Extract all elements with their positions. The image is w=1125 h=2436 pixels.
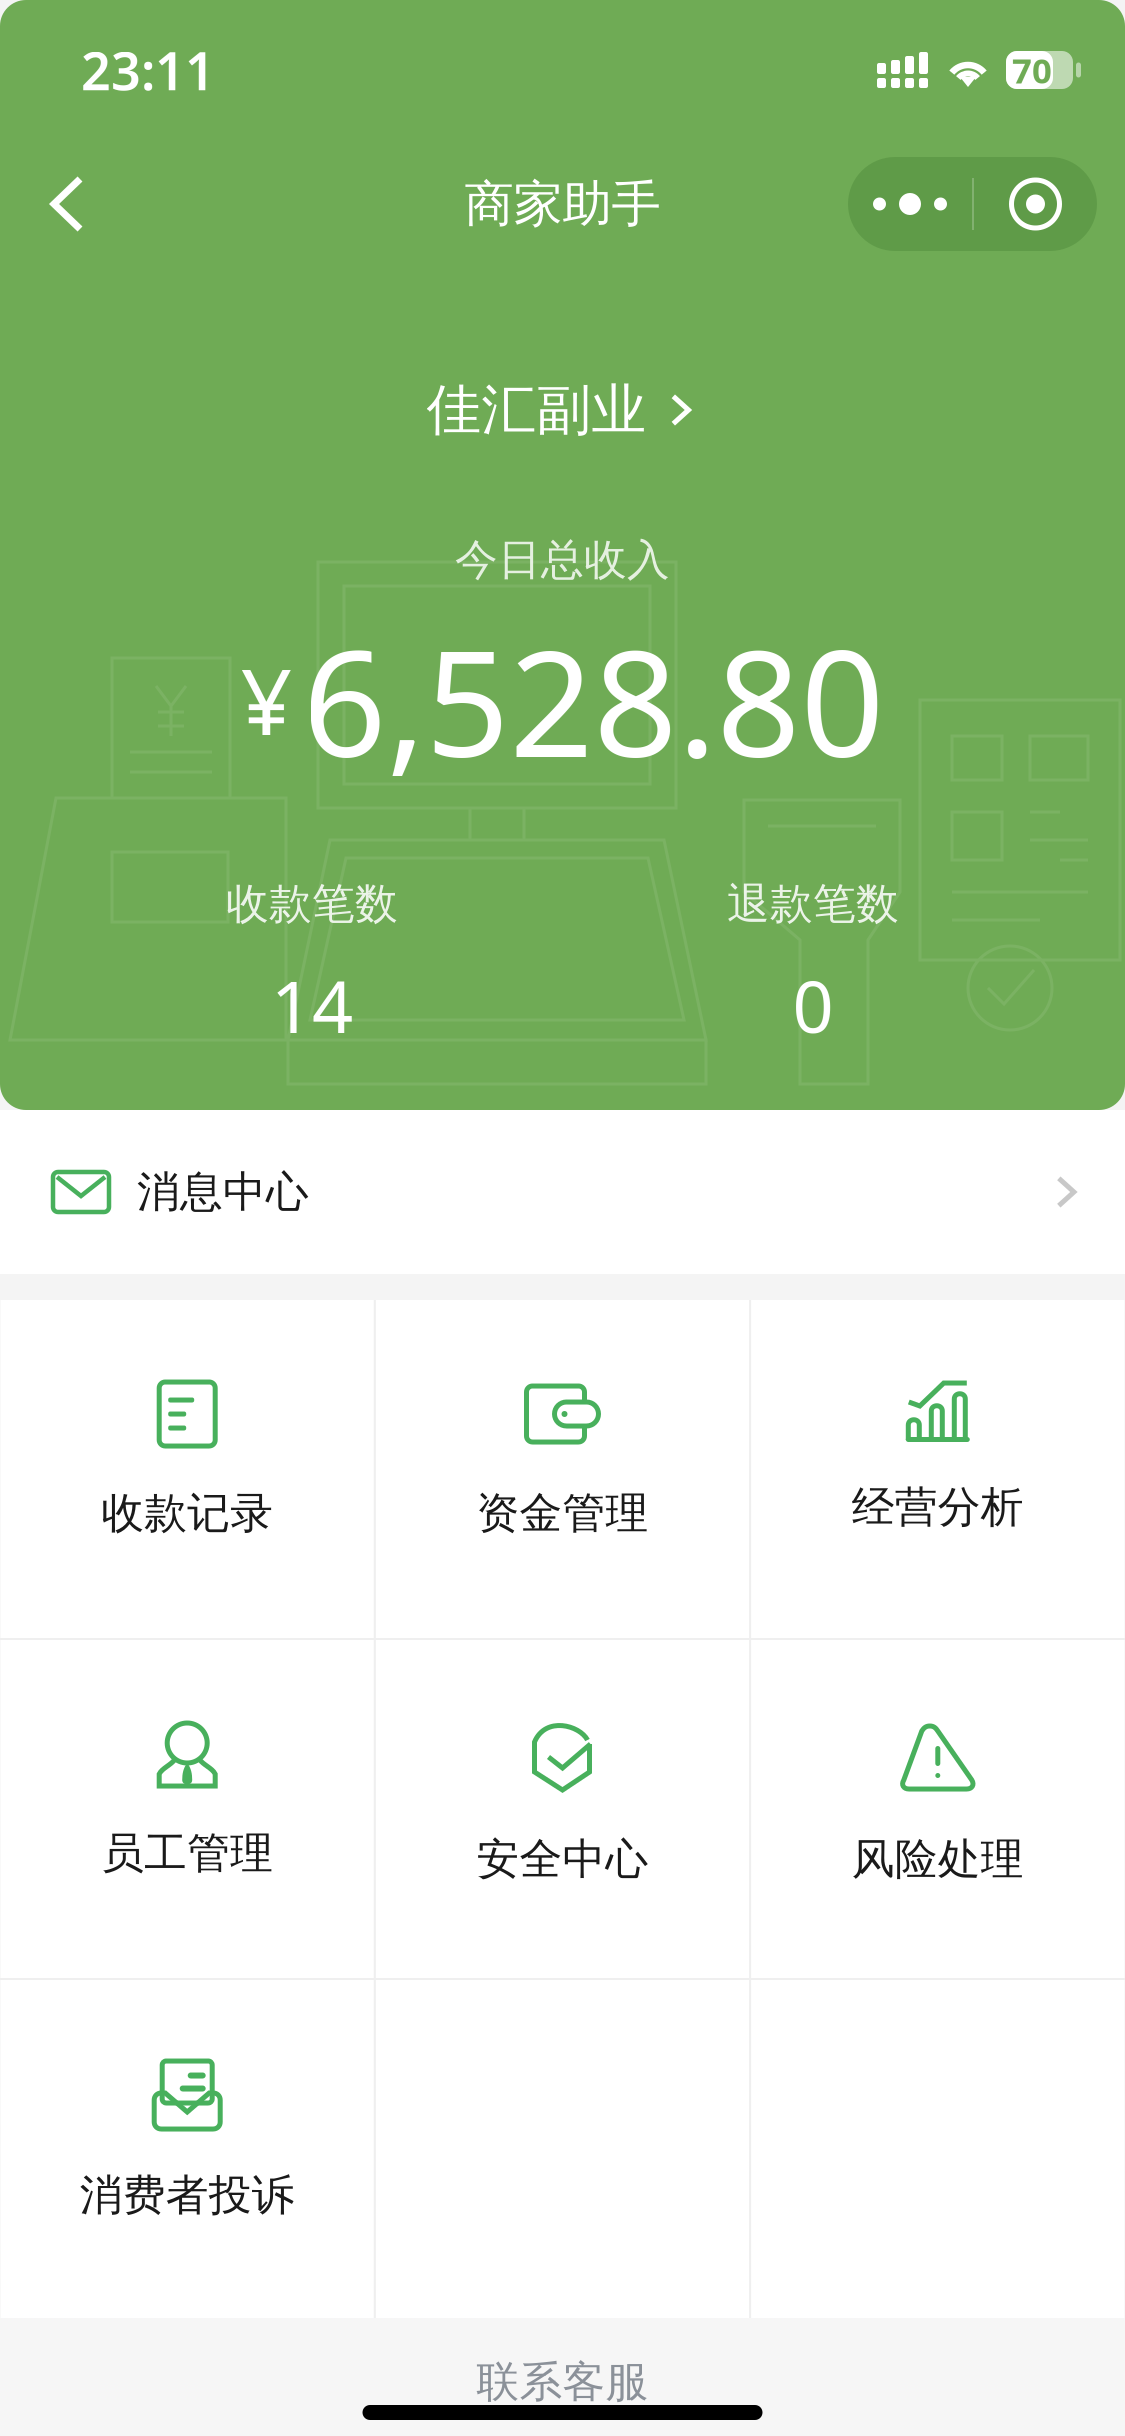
button[interactable]: 佳汇副业 xyxy=(282,350,842,470)
button[interactable]: Close xyxy=(974,157,1097,251)
staticText: 商家助手 xyxy=(464,174,660,234)
button[interactable]: 员工管理 xyxy=(0,1640,374,1978)
button[interactable]: 消费者投诉 xyxy=(0,1980,374,2318)
staticText: 70 xyxy=(1012,47,1052,93)
staticText: 员工管理 xyxy=(101,1827,273,1879)
staticText: 6,528.80 xyxy=(302,603,884,797)
staticText: 联系客服 xyxy=(476,2356,648,2408)
staticText: ¥ xyxy=(240,640,292,760)
button[interactable]: 风险处理 xyxy=(751,1640,1124,1978)
staticText: 今日总收入 xyxy=(455,534,670,586)
staticText: 收款笔数 xyxy=(226,878,398,930)
staticText: 消费者投诉 xyxy=(80,2169,295,2221)
button[interactable]: 联系客服 xyxy=(362,2352,762,2412)
button[interactable]: Back xyxy=(2,149,132,259)
button[interactable]: 收款记录 xyxy=(0,1300,374,1638)
staticText: 14 xyxy=(271,957,353,1053)
button[interactable]: More xyxy=(848,157,972,251)
staticText: 退款笔数 xyxy=(727,878,899,930)
staticText: 佳汇副业 xyxy=(426,376,646,443)
button[interactable]: 消息中心 xyxy=(0,1110,1125,1274)
staticText: 安全中心 xyxy=(476,1833,648,1885)
staticText: 消息中心 xyxy=(137,1166,309,1218)
button[interactable]: 经营分析 xyxy=(751,1300,1124,1638)
staticText: 23:11 xyxy=(81,35,215,105)
staticText: 风险处理 xyxy=(852,1833,1024,1885)
staticText: 经营分析 xyxy=(852,1481,1024,1533)
staticText: 0 xyxy=(792,957,833,1053)
button[interactable]: 资金管理 xyxy=(376,1300,749,1638)
button[interactable]: 安全中心 xyxy=(376,1640,749,1978)
staticText: 收款记录 xyxy=(101,1487,273,1539)
staticText: 资金管理 xyxy=(476,1487,648,1539)
